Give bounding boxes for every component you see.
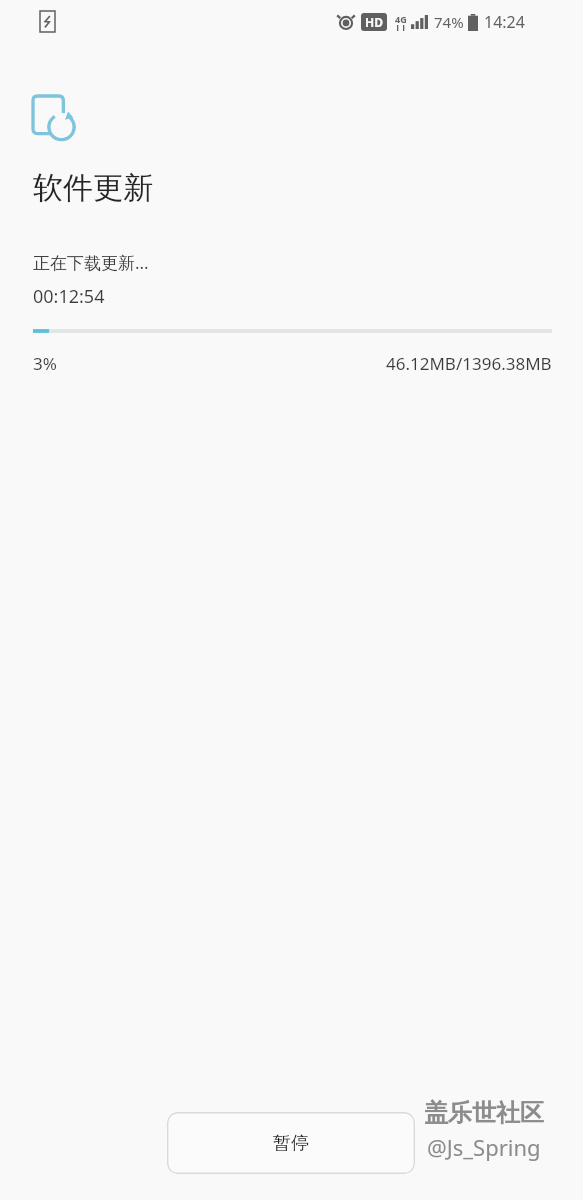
staticText: HD [365,14,383,30]
staticText: 暂停 [273,1132,309,1155]
staticText: 3% [33,352,57,375]
staticText: 4G [395,13,407,25]
staticText: 74% [434,12,464,32]
staticText: 盖乐世社区 [424,1098,544,1128]
button[interactable]: 暂停 [167,1112,415,1174]
staticText: 软件更新 [33,169,153,207]
staticText: 00:12:54 [33,284,105,309]
staticText: 46.12MB/1396.38MB [386,352,552,375]
staticText: 正在下载更新... [33,251,149,274]
staticText: @Js_Spring [427,1132,541,1162]
staticText: 14:24 [484,11,525,33]
